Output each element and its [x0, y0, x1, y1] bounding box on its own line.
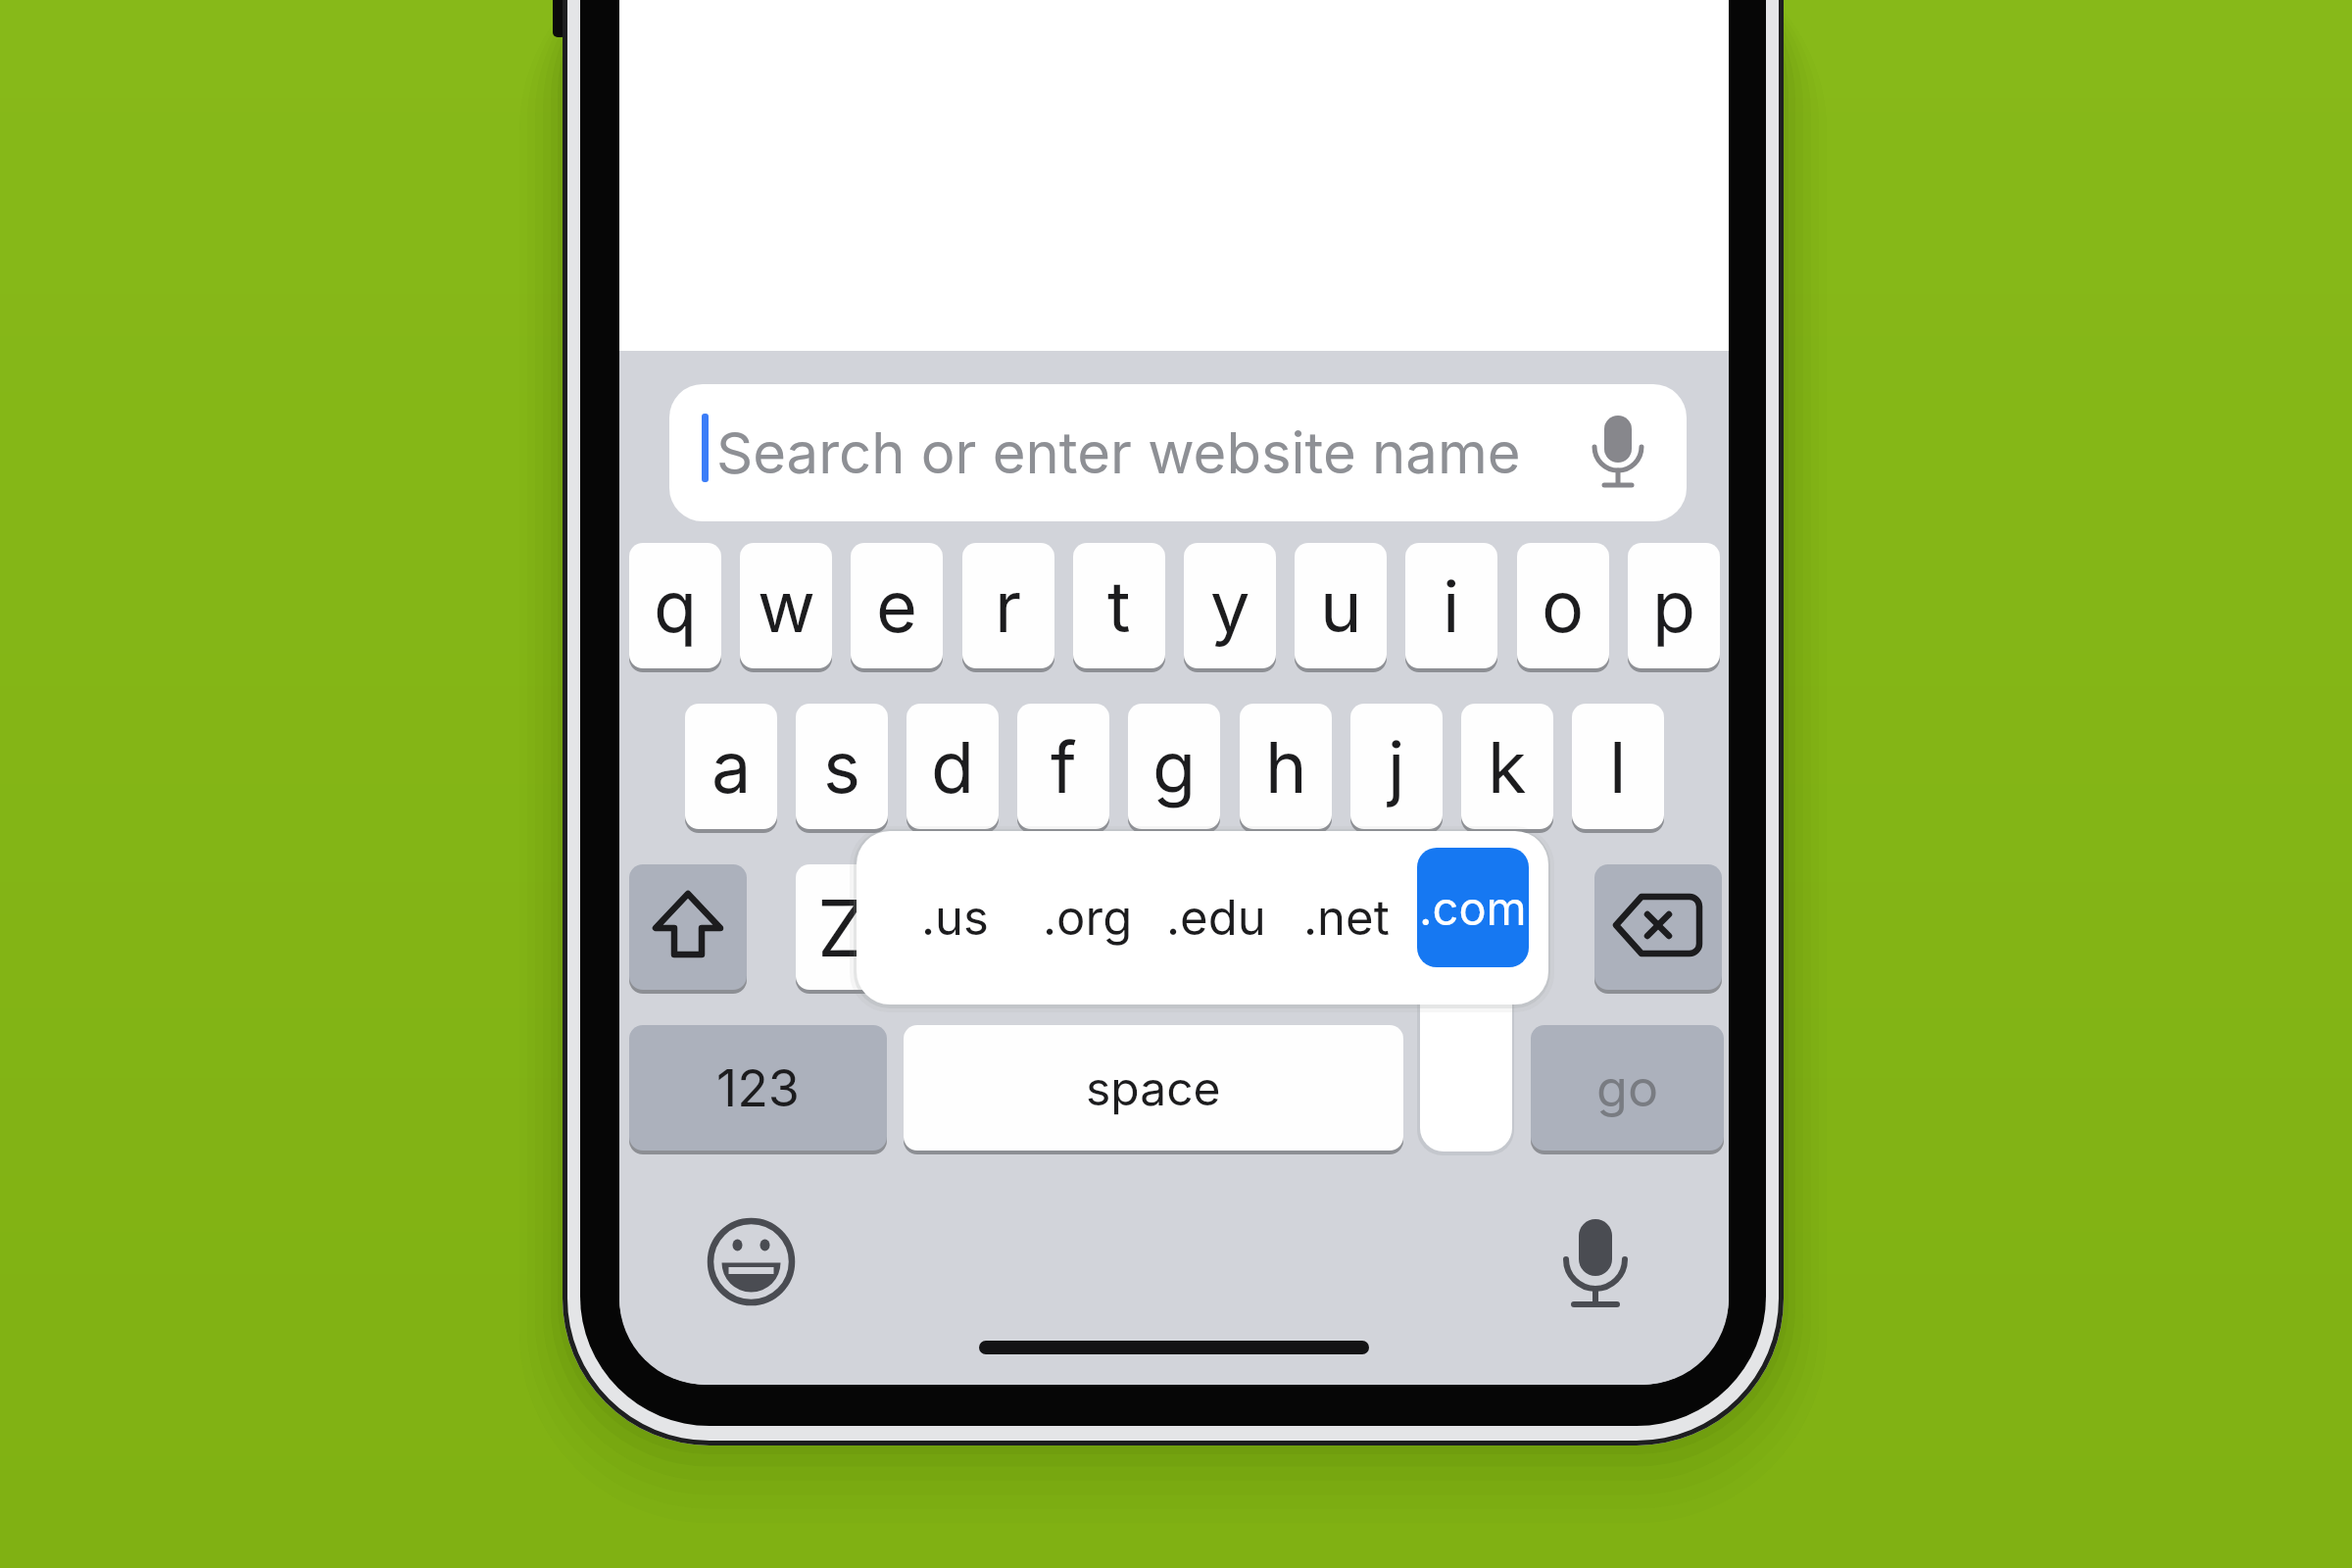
staticText: .org	[1043, 889, 1133, 947]
button[interactable]: f	[1017, 704, 1109, 829]
button[interactable]: q	[629, 543, 721, 668]
button[interactable]	[629, 864, 747, 990]
button[interactable]: r	[962, 543, 1054, 668]
staticText: o	[1542, 563, 1585, 649]
staticText: .net	[1303, 889, 1390, 947]
button[interactable]: y	[1184, 543, 1276, 668]
button[interactable]: u	[1295, 543, 1387, 668]
staticText: j	[1388, 724, 1405, 809]
staticText: t	[1107, 563, 1131, 649]
staticText: w	[758, 563, 815, 649]
staticText: a	[711, 724, 752, 809]
staticText: u	[1320, 563, 1362, 649]
button[interactable]: g	[1128, 704, 1220, 829]
button[interactable]: 123	[629, 1025, 887, 1151]
staticText: i	[1443, 563, 1460, 649]
button[interactable]: w	[740, 543, 832, 668]
staticText: .com	[1419, 880, 1527, 936]
staticText: space	[1086, 1059, 1221, 1116]
staticText: q	[654, 563, 698, 649]
staticText: Search or enter website name	[716, 418, 1521, 487]
staticText: h	[1265, 724, 1307, 809]
staticText: g	[1152, 724, 1197, 809]
staticText: 123	[716, 1057, 800, 1119]
staticText: d	[931, 724, 975, 809]
button[interactable]: j	[1350, 704, 1443, 829]
staticText: .edu	[1166, 889, 1266, 947]
staticText: go	[1596, 1057, 1659, 1119]
staticText: y	[1210, 563, 1250, 649]
button[interactable]: .com	[1417, 848, 1529, 967]
button[interactable]: e	[851, 543, 943, 668]
button[interactable]: t	[1073, 543, 1165, 668]
button[interactable]: p	[1628, 543, 1720, 668]
staticText: s	[823, 724, 861, 809]
button[interactable]	[1594, 864, 1722, 990]
button[interactable]: Z	[796, 864, 888, 990]
staticText: f	[1051, 724, 1077, 809]
staticText: r	[995, 563, 1022, 649]
staticText: l	[1609, 724, 1627, 809]
button[interactable]: k	[1461, 704, 1553, 829]
button[interactable]: o	[1517, 543, 1609, 668]
staticText: .us	[921, 889, 989, 947]
button[interactable]: i	[1405, 543, 1497, 668]
button[interactable]: h	[1240, 704, 1332, 829]
staticText: Z	[817, 880, 867, 975]
staticText: k	[1488, 724, 1527, 809]
button[interactable]: d	[906, 704, 999, 829]
button[interactable]: a	[685, 704, 777, 829]
button[interactable]: space	[904, 1025, 1403, 1151]
staticText: e	[876, 563, 917, 649]
button[interactable]: go	[1531, 1025, 1724, 1151]
staticText: p	[1652, 563, 1696, 649]
button[interactable]: s	[796, 704, 888, 829]
button[interactable]: l	[1572, 704, 1664, 829]
button[interactable]: Search or enter website name	[669, 384, 1687, 521]
